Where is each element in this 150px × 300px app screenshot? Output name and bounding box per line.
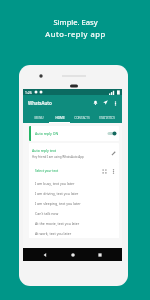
staticText: MENU [34, 116, 44, 120]
button[interactable]: Send [101, 98, 110, 107]
button[interactable]: HOME [49, 110, 70, 123]
button[interactable]: Can't talk now [29, 208, 119, 218]
button[interactable]: At work, text you later [29, 228, 119, 238]
staticText: Simple. Easy [53, 17, 98, 27]
button[interactable]: Notifications [91, 98, 100, 107]
staticText: Auto-reply app [45, 29, 106, 39]
staticText: At the movie, text you later [35, 221, 80, 226]
button[interactable]: CONTACTS [70, 110, 94, 123]
staticText: Can't talk now [35, 211, 59, 216]
staticText: STATISTICS [99, 116, 115, 120]
staticText: Select your text [35, 169, 59, 173]
button[interactable]: Recents [95, 250, 105, 260]
staticText: At work, text you later [35, 231, 72, 236]
button[interactable]: Auto reply text [29, 143, 119, 163]
staticText: I am sleeping, text you later [35, 201, 81, 206]
button[interactable]: Back [40, 250, 50, 260]
staticText: I am busy, text you later [35, 181, 75, 186]
button[interactable]: I am driving, text you later [29, 188, 119, 198]
button[interactable]: Select all [100, 167, 108, 175]
button[interactable]: STATISTICS [94, 110, 119, 123]
button[interactable]: At the movie, text you later [29, 218, 119, 228]
button[interactable]: Edit [109, 149, 118, 158]
staticText: WhatsAuto [28, 100, 52, 106]
staticText: I am driving, text you later [35, 191, 79, 196]
button[interactable]: More options [109, 167, 117, 175]
button[interactable]: More options [111, 99, 119, 107]
button[interactable]: Home [68, 250, 78, 260]
staticText: HOME [55, 116, 65, 120]
staticText: Auto reply ON [35, 131, 59, 136]
button[interactable]: I am sleeping, text you later [29, 198, 119, 208]
button[interactable]: I am busy, text you later [29, 178, 119, 188]
staticText: CONTACTS [74, 116, 90, 120]
button[interactable]: MENU [28, 110, 49, 123]
button[interactable]: Auto reply ON [29, 126, 119, 141]
staticText: Hey friend I am using WhatsAuto App [32, 155, 84, 159]
staticText: 1:26 [25, 90, 32, 95]
button[interactable]: Select your text [29, 163, 119, 178]
staticText: Auto reply text [32, 148, 57, 153]
